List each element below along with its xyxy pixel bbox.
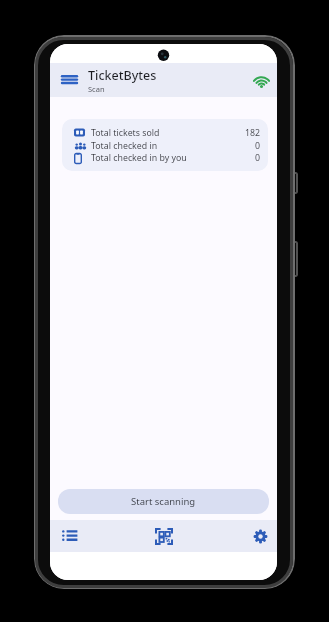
button[interactable] [245,63,277,97]
staticText: 0 [254,140,260,152]
button[interactable] [58,524,82,548]
button[interactable] [50,63,88,97]
staticText: TicketBytes [88,67,157,84]
staticText: Total checked in by you [91,152,187,164]
staticText: Scan [88,84,105,94]
staticText: Total tickets sold [91,127,160,139]
button[interactable] [248,524,272,548]
button[interactable] [152,524,176,548]
staticText: Total checked in [91,140,158,152]
staticText: Start scanning [131,495,196,508]
button[interactable]: Start scanning [58,489,269,514]
staticText: 0 [254,152,260,164]
staticText: 182 [244,127,260,139]
